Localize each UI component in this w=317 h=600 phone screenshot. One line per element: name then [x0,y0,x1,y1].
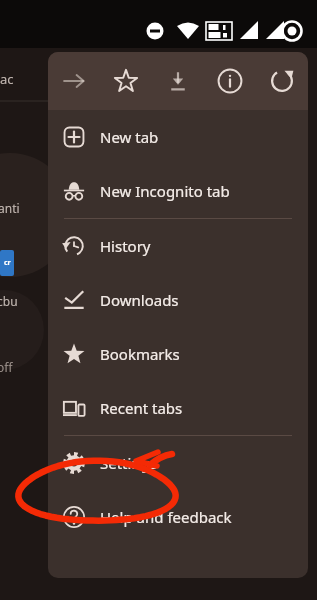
staticText: ac [0,70,14,88]
button[interactable]: Recent tabs [48,381,308,435]
button[interactable]: Bookmarks [48,327,308,381]
button[interactable]: New Incognito tab [48,164,308,218]
staticText: Help and feedback [100,507,232,527]
staticText: New tab [100,127,159,147]
button[interactable]: Forward [48,52,100,110]
staticText: off [0,359,13,375]
button[interactable]: Page info [204,52,256,110]
staticText: New Incognito tab [100,181,230,201]
button[interactable]: Download [152,52,204,110]
staticText: Recent tabs [100,398,183,418]
staticText: cbu [0,293,18,309]
staticText: Settings [100,453,158,473]
button[interactable]: New tab [48,110,308,164]
staticText: History [100,236,151,256]
staticText: Downloads [100,290,179,310]
staticText: anti [0,200,20,216]
button[interactable]: Reload [256,52,308,110]
button[interactable]: Downloads [48,273,308,327]
staticText: Bookmarks [100,344,180,364]
staticText: cr [4,258,11,268]
button[interactable]: Help and feedback [48,490,308,544]
button[interactable]: Settings [48,436,308,490]
button[interactable]: History [48,219,308,273]
button[interactable]: Bookmark [100,52,152,110]
